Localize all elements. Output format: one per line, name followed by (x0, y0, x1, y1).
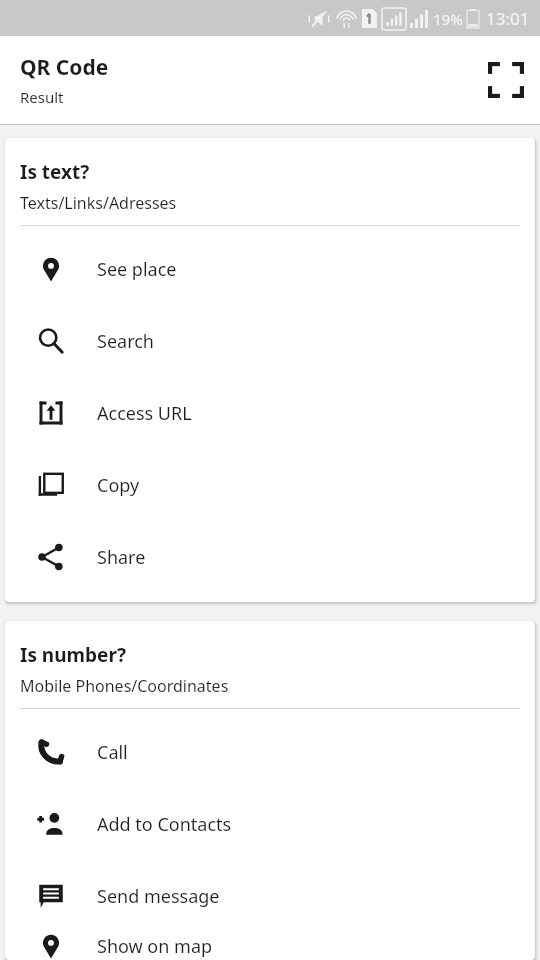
staticText: 19% (433, 9, 463, 29)
button[interactable]: Access URL (5, 377, 535, 449)
button[interactable]: Scan QR code (482, 56, 530, 104)
button[interactable]: Search (5, 305, 535, 377)
button[interactable]: Copy (5, 449, 535, 521)
staticText: Copy (97, 473, 140, 498)
button[interactable]: Share (5, 521, 535, 593)
staticText: Show on map (97, 934, 213, 959)
staticText: Result (20, 87, 64, 107)
button[interactable]: Call (5, 716, 535, 788)
staticText: Is number? (20, 642, 127, 668)
staticText: Search (97, 329, 154, 354)
staticText: QR Code (20, 53, 109, 82)
button[interactable]: See place (5, 233, 535, 305)
button[interactable]: Show on map (5, 932, 535, 960)
staticText: Access URL (97, 401, 192, 426)
staticText: Share (97, 545, 146, 570)
staticText: Is text? (20, 159, 90, 185)
staticText: Call (97, 740, 128, 765)
staticText: 13:01 (486, 7, 530, 30)
staticText: See place (97, 257, 177, 282)
staticText: Mobile Phones/Coordinates (20, 675, 229, 697)
staticText: Send message (97, 884, 220, 909)
staticText: Texts/Links/Adresses (20, 192, 177, 214)
staticText: Add to Contacts (97, 812, 232, 837)
button[interactable]: Send message (5, 860, 535, 932)
button[interactable]: Add to Contacts (5, 788, 535, 860)
